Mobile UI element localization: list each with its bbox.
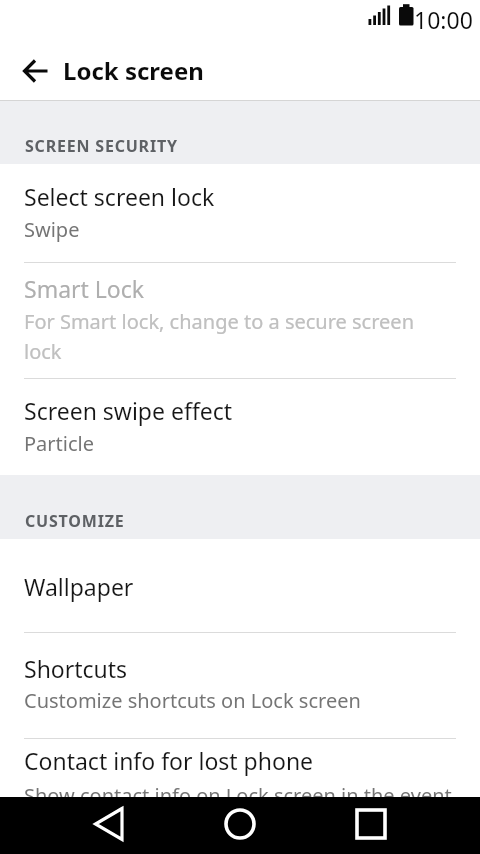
staticText: CUSTOMIZE	[25, 510, 125, 532]
button[interactable]	[12, 48, 60, 96]
staticText: For Smart lock, change to a secure scree…	[24, 308, 414, 335]
button[interactable]	[205, 797, 275, 854]
button[interactable]: Screen swipe effect	[0, 379, 480, 475]
staticText: Wallpaper	[24, 571, 134, 602]
staticText: Screen swipe effect	[24, 395, 233, 426]
button[interactable]: Contact info for lost phone	[0, 739, 480, 797]
staticText: Swipe	[24, 216, 80, 243]
staticText: 10:00	[414, 4, 473, 35]
staticText: Lock screen	[63, 54, 204, 87]
staticText: Particle	[24, 430, 94, 457]
staticText: Shortcuts	[24, 653, 128, 684]
staticText: Contact info for lost phone	[24, 745, 314, 776]
staticText: Smart Lock	[24, 273, 145, 304]
button[interactable]	[336, 797, 406, 854]
button[interactable]: Select screen lock	[0, 164, 480, 262]
button[interactable]: Shortcuts	[0, 633, 480, 738]
button[interactable]: Smart Lock	[0, 263, 480, 378]
button[interactable]: Wallpaper	[0, 539, 480, 632]
staticText: Show contact info on Lock screen in the …	[24, 782, 452, 797]
staticText: SCREEN SECURITY	[25, 135, 178, 157]
staticText: Customize shortcuts on Lock screen	[24, 687, 361, 714]
button[interactable]	[74, 797, 144, 854]
staticText: lock	[24, 338, 62, 365]
staticText: Select screen lock	[24, 181, 215, 212]
